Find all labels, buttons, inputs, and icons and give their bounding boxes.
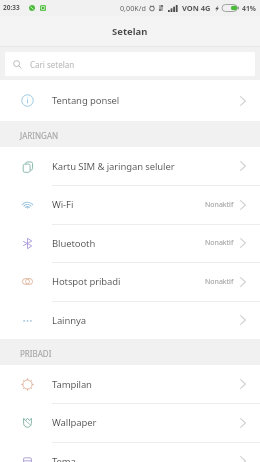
staticText: Kartu SIM & jaringan seluler bbox=[52, 160, 175, 173]
staticText: 0,00K/d bbox=[120, 3, 146, 13]
staticText: 20:33 bbox=[3, 3, 20, 12]
button[interactable]: Hotspot pribadi bbox=[0, 262, 260, 301]
staticText: PRIBADI bbox=[20, 348, 52, 359]
staticText: Wi-Fi bbox=[52, 198, 74, 211]
button[interactable]: Lainnya bbox=[0, 301, 260, 339]
staticText: Hotspot pribadi bbox=[52, 275, 121, 288]
staticText: Tentang ponsel bbox=[52, 94, 120, 107]
button[interactable]: Tampilan bbox=[0, 365, 260, 403]
staticText: Lainnya bbox=[52, 314, 86, 327]
button[interactable]: Tentang ponsel bbox=[0, 80, 260, 121]
button[interactable]: Bluetooth bbox=[0, 224, 260, 262]
staticText: 41% bbox=[242, 4, 256, 13]
staticText: VON 4G bbox=[182, 3, 211, 13]
staticText: Nonaktif bbox=[205, 200, 234, 210]
staticText: Cari setelan bbox=[30, 59, 75, 70]
staticText: Wallpaper bbox=[52, 416, 97, 429]
button[interactable]: Wi-Fi bbox=[0, 185, 260, 224]
button[interactable]: Wallpaper bbox=[0, 403, 260, 442]
button[interactable]: Cari setelan bbox=[5, 52, 255, 76]
staticText: Tema bbox=[52, 455, 76, 462]
staticText: Tampilan bbox=[52, 378, 92, 391]
staticText: Setelan bbox=[112, 25, 148, 38]
staticText: Nonaktif bbox=[205, 277, 234, 287]
staticText: Nonaktif bbox=[205, 238, 234, 248]
button[interactable]: Tema bbox=[0, 442, 260, 462]
button[interactable]: Kartu SIM & jaringan seluler bbox=[0, 147, 260, 185]
staticText: Bluetooth bbox=[52, 237, 96, 250]
staticText: JARINGAN bbox=[20, 130, 59, 141]
